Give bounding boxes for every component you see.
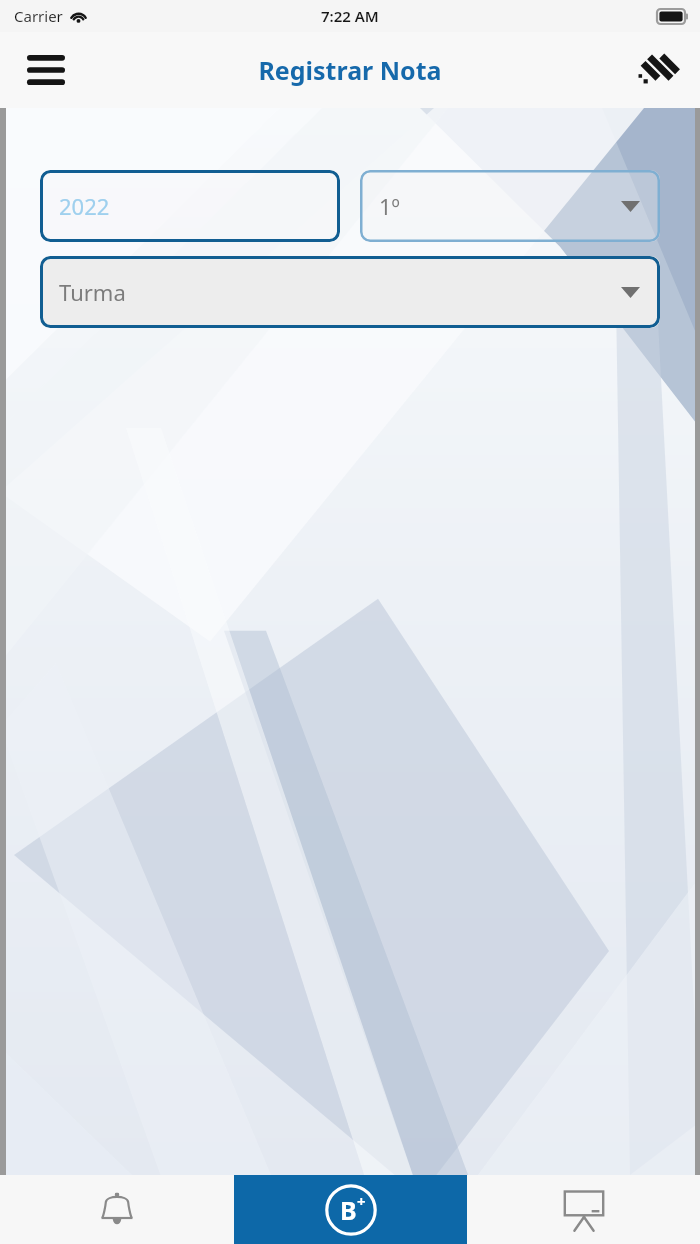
button[interactable]: Notifications: [0, 1175, 234, 1244]
button[interactable]: 2022: [40, 170, 340, 242]
staticText: Registrar Nota: [258, 53, 442, 87]
staticText: Turma: [59, 277, 126, 307]
staticText: B: [340, 1193, 357, 1227]
staticText: +: [357, 1191, 366, 1211]
button[interactable]: 1º: [360, 170, 660, 242]
button[interactable]: App logo: [630, 43, 684, 97]
button[interactable]: Menu: [18, 42, 74, 98]
button[interactable]: Aulas: [467, 1175, 700, 1244]
staticText: 1º: [379, 191, 400, 221]
staticText: Carrier: [14, 6, 63, 26]
staticText: 7:22 AM: [321, 6, 379, 26]
staticText: 2022: [59, 191, 110, 221]
button[interactable]: Turma: [40, 256, 660, 328]
button[interactable]: Boletim: [234, 1175, 467, 1244]
